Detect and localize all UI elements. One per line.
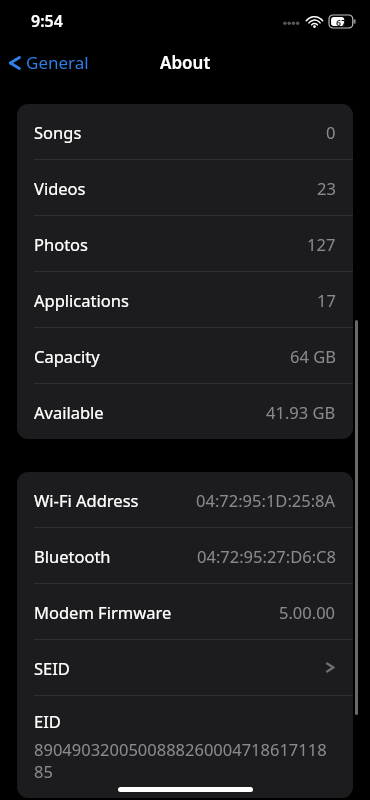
button[interactable]: Videos [17,159,353,215]
staticText: Videos [34,177,86,199]
button[interactable]: Wi-Fi Address [17,472,353,527]
button[interactable]: Modem Firmware [17,583,353,639]
staticText: Bluetooth [34,545,111,567]
button[interactable]: Applications [17,271,353,327]
staticText: Wi-Fi Address [34,489,139,511]
staticText: Modem Firmware [34,601,172,623]
button[interactable]: SEID details [17,639,353,695]
staticText: Applications [34,289,129,311]
staticText: 23 [317,177,336,199]
staticText: Available [34,401,104,423]
staticText: General [26,51,89,74]
staticText: 5.00.00 [279,601,336,623]
staticText: EID [34,710,61,732]
button[interactable]: Available [17,383,353,439]
staticText: 64 GB [290,345,336,367]
button[interactable]: General [0,47,99,78]
staticText: 04:72:95:1D:25:8A [196,489,336,511]
staticText: 0 [326,121,336,143]
staticText: 890490320050088826000471861711885 [34,738,336,782]
staticText: Photos [34,233,89,255]
button[interactable]: Capacity [17,327,353,383]
staticText: Capacity [34,345,100,367]
staticText: Songs [34,121,82,143]
staticText: 67 [336,16,347,28]
staticText: SEID [34,657,70,679]
button[interactable]: Bluetooth [17,527,353,583]
button[interactable]: Photos [17,215,353,271]
staticText: 127 [307,233,336,255]
button[interactable]: Songs [17,104,353,159]
staticText: 17 [317,289,336,311]
button[interactable]: EID [17,695,353,798]
staticText: 9:54 [31,10,63,32]
staticText: 04:72:95:27:D6:C8 [197,545,336,567]
staticText: 41.93 GB [266,401,336,423]
staticText: About [160,51,211,74]
